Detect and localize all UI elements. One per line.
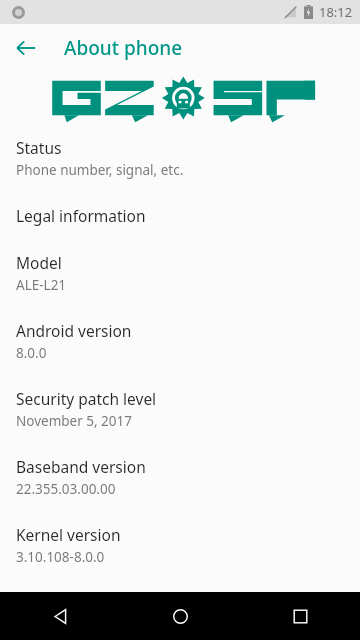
button[interactable]: Model [0, 239, 360, 307]
staticText: 8.0.0 [16, 344, 47, 362]
staticText: Android version [16, 320, 132, 341]
button[interactable]: Status [0, 124, 360, 192]
staticText: Security patch level [16, 388, 157, 409]
staticText: 22.355.03.00.00 [16, 480, 116, 498]
button[interactable]: Navigate up [4, 26, 48, 70]
button[interactable]: Back [0, 592, 120, 640]
button[interactable]: Baseband version [0, 443, 360, 511]
button[interactable]: Android version [0, 307, 360, 375]
staticText: November 5, 2017 [16, 412, 132, 430]
staticText: 18:12 [319, 3, 353, 21]
staticText: ALE-L21 [16, 276, 67, 294]
staticText: About phone [64, 35, 183, 61]
button[interactable]: Kernel version [0, 511, 360, 579]
button[interactable]: Home [120, 592, 240, 640]
staticText: 3.10.108-8.0.0 [16, 548, 105, 566]
button[interactable]: Recent apps [240, 592, 360, 640]
staticText: Kernel version [16, 524, 121, 545]
staticText: Model [16, 252, 62, 273]
button[interactable]: Security patch level [0, 375, 360, 443]
staticText: Legal information [16, 205, 146, 226]
staticText: Status [16, 137, 62, 158]
staticText: Baseband version [16, 456, 146, 477]
button[interactable]: Legal information [0, 192, 360, 239]
staticText: Phone number, signal, etc. [16, 161, 184, 179]
